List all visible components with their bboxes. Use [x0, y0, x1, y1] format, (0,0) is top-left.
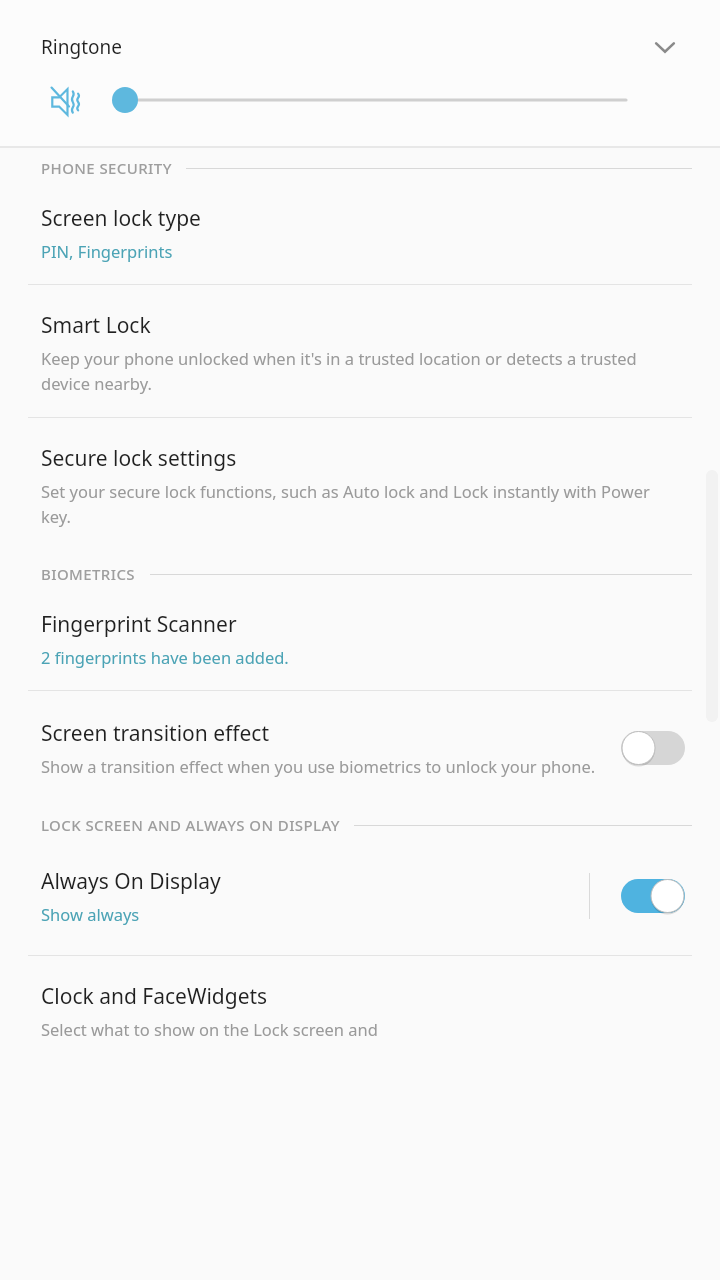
staticText: Select what to show on the Lock screen a… — [41, 1018, 378, 1040]
staticText: PIN, Fingerprints — [41, 240, 173, 262]
staticText: Clock and FaceWidgets — [41, 982, 268, 1011]
staticText: Keep your phone unlocked when it's in a … — [41, 347, 662, 395]
staticText: Show always — [41, 903, 140, 925]
button[interactable]: Always On Display — [616, 868, 690, 924]
staticText: Always On Display — [41, 867, 221, 896]
staticText: 2 fingerprints have been added. — [41, 646, 289, 668]
staticText: LOCK SCREEN AND ALWAYS ON DISPLAY — [41, 815, 340, 835]
button[interactable]: Always On Display — [0, 859, 589, 933]
staticText: Smart Lock — [41, 311, 151, 340]
button[interactable]: Secure lock settings — [0, 444, 720, 528]
staticText: Screen lock type — [41, 204, 201, 233]
staticText: PHONE SECURITY — [41, 158, 172, 178]
staticText: Show a transition effect when you use bi… — [41, 755, 596, 777]
button[interactable]: Smart Lock — [0, 311, 720, 395]
button[interactable]: Screen transition effect — [0, 711, 616, 785]
staticText: Secure lock settings — [41, 444, 237, 473]
button[interactable]: Fingerprint Scanner — [0, 610, 720, 668]
button[interactable]: Collapse — [636, 18, 694, 76]
staticText: Set your secure lock functions, such as … — [41, 480, 662, 528]
staticText: Fingerprint Scanner — [41, 610, 237, 639]
button[interactable]: Ringtone volume — [112, 87, 138, 113]
button[interactable]: Screen transition effect — [616, 720, 690, 776]
button[interactable]: Screen lock type — [0, 204, 720, 262]
staticText: Ringtone — [41, 34, 122, 60]
staticText: BIOMETRICS — [41, 564, 136, 584]
button[interactable]: Clock and FaceWidgets — [0, 982, 720, 1040]
staticText: Screen transition effect — [41, 719, 269, 748]
